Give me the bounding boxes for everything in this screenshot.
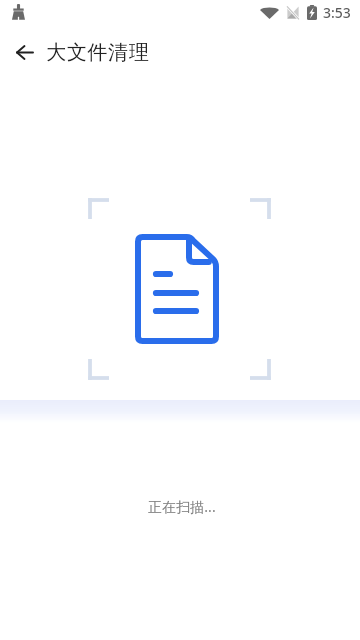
staticText: 大文件清理 <box>46 40 149 65</box>
staticText: 正在扫描... <box>2 497 360 516</box>
button[interactable]: Back <box>0 30 48 78</box>
staticText: 3:53 <box>323 3 351 22</box>
